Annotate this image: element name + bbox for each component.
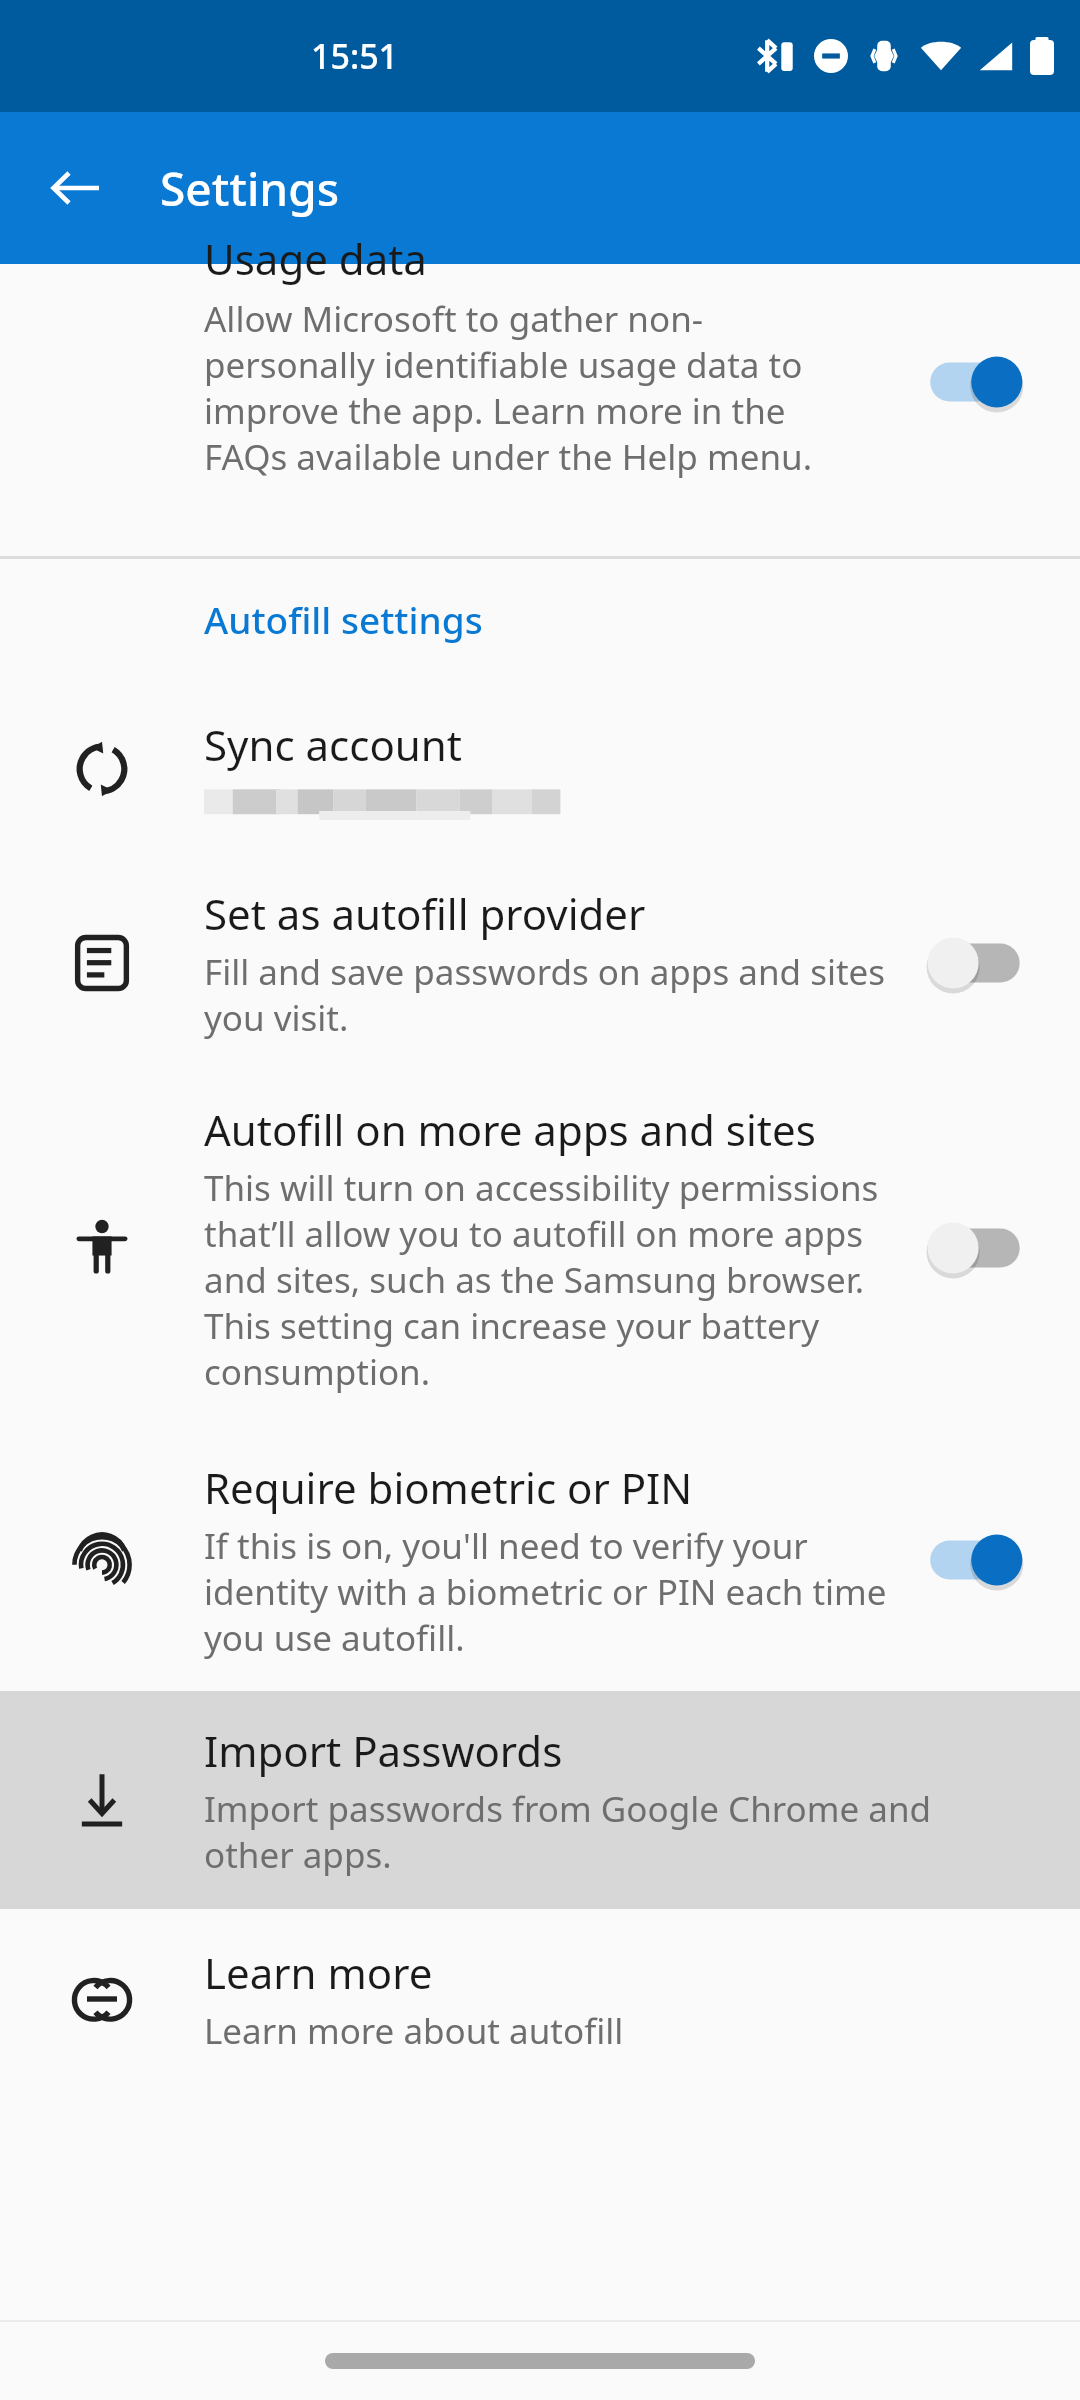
staticText: Learn more about autofill [204, 2007, 624, 2055]
staticText: Usage data [204, 230, 427, 287]
button[interactable]: Accessibility [0, 1067, 1080, 1429]
button[interactable]: Biometric [0, 1429, 1080, 1691]
staticText: Import passwords from Google Chrome and … [204, 1785, 1010, 1878]
staticText: 15:51 [311, 33, 399, 79]
button[interactable]: Autofill provider [0, 859, 1080, 1067]
staticText: Fill and save passwords on apps and site… [204, 948, 900, 1041]
staticText: Learn more [204, 1944, 433, 2001]
staticText: Require biometric or PIN [204, 1459, 693, 1516]
button[interactable]: Import [0, 1691, 1080, 1909]
staticText: Import Passwords [204, 1722, 563, 1779]
staticText: Set as autofill provider [204, 885, 646, 942]
other: Learn more [0, 1978, 204, 2020]
staticText: Allow Microsoft to gather non-personally… [204, 295, 840, 480]
button[interactable]: Usage data [0, 264, 1080, 556]
other: Autofill provider [0, 934, 204, 992]
staticText: This will turn on accessibility permissi… [204, 1164, 900, 1395]
staticText: Autofill settings [204, 594, 483, 644]
button[interactable]: Off [924, 927, 1028, 999]
staticText: Sync account [204, 716, 462, 773]
staticText: If this is on, you'll need to verify you… [204, 1522, 900, 1661]
button[interactable]: Sync account [0, 679, 1080, 859]
other: Accessibility [0, 1219, 204, 1277]
button[interactable]: On [924, 1524, 1028, 1596]
button[interactable]: On [924, 346, 1028, 418]
staticText: Settings [160, 157, 340, 220]
button[interactable]: Back [24, 136, 128, 240]
button[interactable]: Learn more [0, 1909, 1080, 2089]
button[interactable]: Off [924, 1212, 1028, 1284]
staticText: Autofill on more apps and sites [204, 1101, 816, 1158]
other: Import [0, 1772, 204, 1828]
other: Biometric [0, 1530, 204, 1590]
